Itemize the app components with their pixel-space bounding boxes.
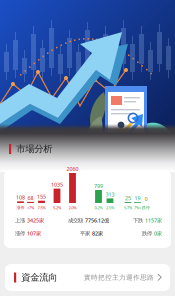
staticText: 下跌 [133, 217, 143, 224]
staticText: 2-5% [106, 205, 114, 210]
staticText: 108 [16, 194, 25, 201]
staticText: 82家 [92, 230, 103, 237]
staticText: 漲停 [15, 230, 25, 237]
staticText: 5-2% [53, 205, 61, 210]
staticText: >7% [27, 205, 34, 210]
staticText: 跌停 [142, 205, 150, 210]
staticText: 成交額 [68, 217, 83, 224]
staticText: 平家 [80, 230, 90, 237]
staticText: 25 [125, 195, 131, 202]
staticText: 107家 [27, 230, 41, 237]
staticText: 實時把控主力運作思路 [84, 273, 154, 282]
staticText: 7756.12億 [85, 217, 109, 224]
staticText: 跌停 [142, 230, 152, 237]
staticText: 漲停 [16, 205, 24, 210]
staticText: 2-0% [68, 205, 76, 210]
staticText: 5-7% [124, 205, 132, 210]
staticText: 799 [94, 182, 103, 190]
staticText: 3425家 [27, 217, 44, 224]
staticText: 1035 [51, 181, 63, 188]
staticText: 1157家 [145, 217, 162, 224]
staticText: 313 [105, 191, 114, 198]
staticText: 2060 [66, 165, 78, 173]
staticText: 7-5% [37, 205, 45, 210]
staticText: 上漲 [15, 217, 25, 224]
staticText: 0家 [154, 230, 162, 237]
staticText: 0 [144, 195, 147, 203]
button[interactable]: 資金流向 [5, 264, 170, 291]
staticText: 資金流向 [21, 272, 57, 283]
staticText: 68 [27, 194, 33, 201]
staticText: 7%< [134, 205, 141, 210]
staticText: 市場分析 [16, 143, 52, 155]
staticText: 0-2% [94, 205, 102, 210]
staticText: 19 [134, 195, 140, 202]
staticText: 155 [37, 193, 46, 200]
